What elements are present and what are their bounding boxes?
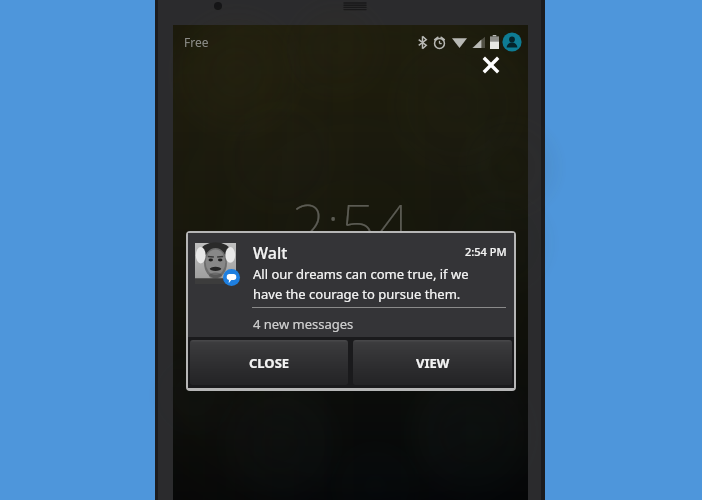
staticText: have the courage to pursue them. [253, 285, 461, 303]
staticText: 2:54 PM [465, 244, 507, 259]
staticText: VIEW [416, 354, 450, 372]
button[interactable]: Close [475, 49, 507, 81]
staticText: 2:54 [291, 183, 411, 267]
staticText: 4 new messages [253, 315, 354, 333]
staticText: Walt [253, 242, 288, 264]
button[interactable]: Walt [188, 233, 514, 337]
staticText: Free [184, 34, 209, 50]
staticText: CLOSE [249, 354, 290, 372]
button[interactable]: VIEW [353, 340, 512, 385]
staticText: All our dreams can come true, if we [253, 265, 469, 283]
button[interactable]: CLOSE [190, 340, 348, 385]
